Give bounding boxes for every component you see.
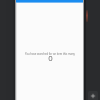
staticText: 0 xyxy=(48,53,53,64)
button[interactable]: Move xyxy=(88,91,98,100)
button[interactable]: You have searched for an item this many xyxy=(16,0,84,100)
staticText: You have searched for an item this many xyxy=(25,52,75,56)
button[interactable]: Power xyxy=(86,10,88,22)
